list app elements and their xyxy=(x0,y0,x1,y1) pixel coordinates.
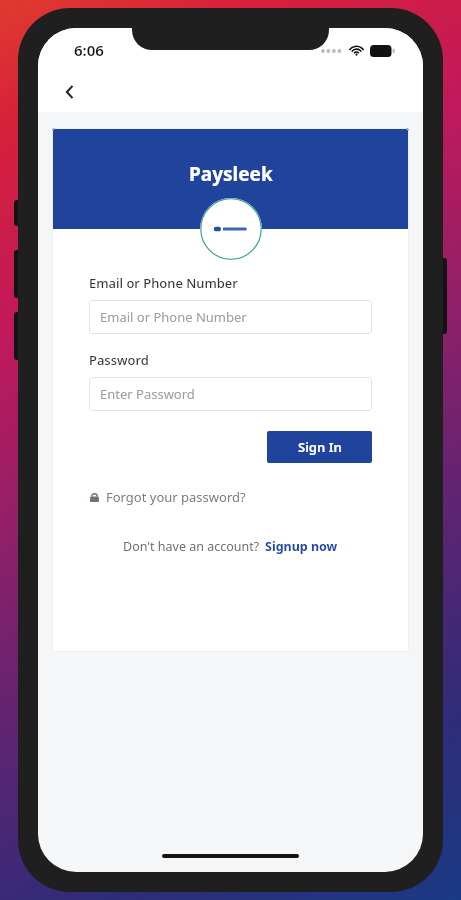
staticText: Email or Phone Number xyxy=(89,274,238,292)
staticText: Password xyxy=(89,351,149,369)
button[interactable]: Sign In xyxy=(267,431,372,463)
button[interactable]: Back xyxy=(50,72,90,112)
staticText: Don't have an account? xyxy=(123,538,260,555)
staticText: Forgot your password? xyxy=(106,488,246,506)
button[interactable]: Signup now xyxy=(265,538,338,555)
staticText: 6:06 xyxy=(74,40,104,60)
button[interactable]: Forgot your password? xyxy=(89,488,246,506)
staticText: Email or Phone Number xyxy=(100,308,247,326)
staticText: Signup now xyxy=(265,538,338,555)
staticText: Paysleek xyxy=(189,161,273,187)
button[interactable]: Email or Phone Number xyxy=(89,300,372,334)
staticText: Enter Password xyxy=(100,385,195,403)
staticText: Sign In xyxy=(298,438,342,456)
button[interactable]: Enter Password xyxy=(89,377,372,411)
